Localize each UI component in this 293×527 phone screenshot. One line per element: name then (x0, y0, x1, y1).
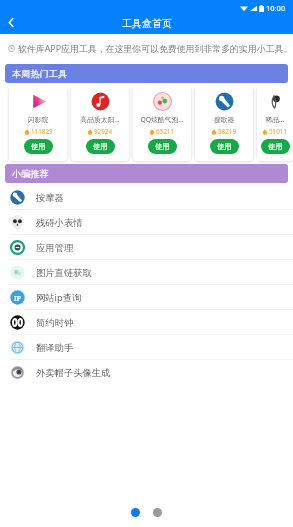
staticText: 使用 (268, 142, 283, 151)
staticText: IP (14, 293, 22, 303)
staticText: 65211 (156, 127, 175, 136)
button[interactable]: 稀品… (257, 85, 293, 161)
staticText: 小编推荐 (12, 168, 49, 180)
staticText: 92924 (94, 127, 113, 136)
staticText: 工具盒首页 (122, 17, 172, 30)
button[interactable]: Back (0, 11, 22, 33)
staticText: 稀品… (259, 115, 291, 124)
staticText: 使用 (217, 142, 232, 151)
staticText: 残碍小表情 (36, 217, 83, 229)
button[interactable]: 外卖帽子头像生成 (0, 360, 293, 385)
staticText: 本周热门工具 (12, 68, 68, 80)
button[interactable]: 高品质太阳… (71, 85, 129, 161)
button[interactable]: 残碍小表情 (0, 210, 293, 235)
staticText: 搜歌器 (197, 115, 251, 124)
button[interactable]: QQ炫酷气泡… (133, 85, 191, 161)
staticText: 应用管理 (36, 242, 74, 254)
staticText: 高品质太阳… (73, 115, 127, 124)
staticText: 图片直链获取 (36, 267, 92, 279)
staticText: 58219 (218, 127, 237, 136)
button[interactable]: 闪影院 (9, 85, 67, 161)
staticText: 10:00 (266, 3, 286, 13)
button[interactable]: 搜歌器 (195, 85, 253, 161)
staticText: 闪影院 (11, 115, 65, 124)
staticText: 翻译助手 (36, 342, 74, 354)
staticText: 外卖帽子头像生成 (36, 367, 111, 379)
button[interactable]: 本周热门工具 (5, 64, 288, 83)
button[interactable]: IP (0, 285, 293, 310)
button[interactable]: 使用 (24, 139, 53, 154)
staticText: 使用 (31, 142, 46, 151)
button[interactable]: 翻译助手 (0, 335, 293, 360)
staticText: 111829 (31, 127, 53, 136)
staticText: 按摩器 (36, 192, 64, 204)
button[interactable]: 使用 (86, 139, 115, 154)
button[interactable]: 小编推荐 (5, 164, 288, 183)
staticText: 使用 (155, 142, 170, 151)
staticText: 软件库APP应用工具，在这里你可以免费使用到非常多的实用小工具。 (18, 42, 293, 54)
button[interactable]: 使用 (261, 139, 290, 154)
staticText: 使用 (93, 142, 108, 151)
staticText: 网站ip查询 (36, 291, 82, 304)
button[interactable]: 图片直链获取 (0, 260, 293, 285)
button[interactable]: 使用 (148, 139, 177, 154)
button[interactable]: 简约时钟 (0, 310, 293, 335)
staticText: 简约时钟 (36, 317, 74, 329)
button[interactable]: 按摩器 (0, 185, 293, 210)
staticText: 51011 (269, 127, 288, 136)
button[interactable]: 应用管理 (0, 235, 293, 260)
staticText: QQ炫酷气泡… (135, 115, 189, 124)
button[interactable]: 使用 (210, 139, 239, 154)
